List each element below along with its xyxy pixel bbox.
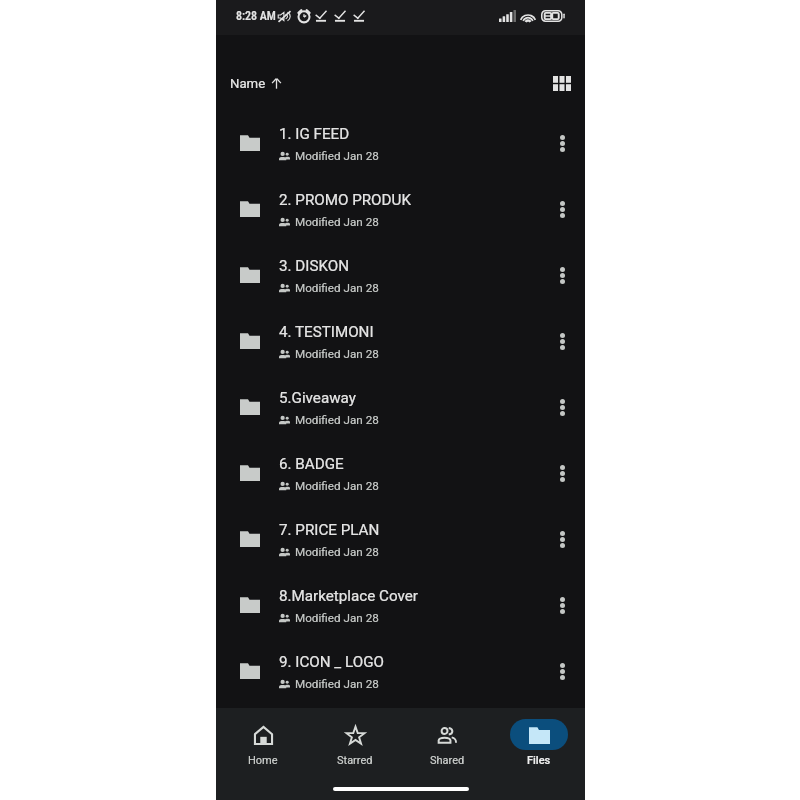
button[interactable]: 7. PRICE PLAN xyxy=(216,504,585,570)
staticText: Modified Jan 28 xyxy=(295,611,379,625)
staticText: Shared xyxy=(430,754,465,767)
staticText: 6. BADGE xyxy=(279,455,344,473)
button[interactable]: 2. PROMO PRODUK xyxy=(216,174,585,240)
staticText: Modified Jan 28 xyxy=(295,479,379,493)
button[interactable]: Name xyxy=(228,68,285,99)
button[interactable]: 6. BADGE xyxy=(216,438,585,504)
button[interactable]: More options xyxy=(542,517,582,557)
staticText: 9. ICON _ LOGO xyxy=(279,653,384,671)
button[interactable]: 5.Giveaway xyxy=(216,372,585,438)
staticText: Modified Jan 28 xyxy=(295,545,379,559)
staticText: Modified Jan 28 xyxy=(295,347,379,361)
staticText: 7. PRICE PLAN xyxy=(279,521,380,539)
staticText: 8:28 AM xyxy=(236,9,276,23)
staticText: Modified Jan 28 xyxy=(295,215,379,229)
button[interactable]: 9. ICON _ LOGO xyxy=(216,636,585,702)
button[interactable]: 4. TESTIMONI xyxy=(216,306,585,372)
button[interactable]: More options xyxy=(542,451,582,491)
button[interactable]: More options xyxy=(542,319,582,359)
button[interactable]: Home xyxy=(216,719,309,767)
button[interactable]: More options xyxy=(542,253,582,293)
staticText: Starred xyxy=(337,754,373,767)
staticText: Modified Jan 28 xyxy=(295,149,379,163)
staticText: 2. PROMO PRODUK xyxy=(279,191,411,209)
staticText: 3. DISKON xyxy=(279,257,350,275)
staticText: 8.Marketplace Cover xyxy=(279,587,418,605)
staticText: Home xyxy=(248,754,278,767)
button[interactable]: Shared xyxy=(401,719,493,767)
button[interactable]: 8.Marketplace Cover xyxy=(216,570,585,636)
staticText: 4. TESTIMONI xyxy=(279,323,374,341)
staticText: Modified Jan 28 xyxy=(295,413,379,427)
button[interactable]: Files xyxy=(493,719,585,767)
button[interactable]: 3. DISKON xyxy=(216,240,585,306)
button[interactable]: More options xyxy=(542,385,582,425)
staticText: Modified Jan 28 xyxy=(295,281,379,295)
staticText: Files xyxy=(527,754,551,767)
staticText: Modified Jan 28 xyxy=(295,677,379,691)
staticText: 5.Giveaway xyxy=(279,389,356,407)
button[interactable]: More options xyxy=(542,649,582,689)
button[interactable]: More options xyxy=(542,583,582,623)
button[interactable]: More options xyxy=(542,187,582,227)
button[interactable]: Starred xyxy=(309,719,401,767)
button[interactable]: Grid view xyxy=(545,66,579,100)
staticText: 1. IG FEED xyxy=(279,125,350,143)
button[interactable]: 1. IG FEED xyxy=(216,108,585,174)
staticText: Name xyxy=(230,76,266,91)
button[interactable]: More options xyxy=(542,121,582,161)
